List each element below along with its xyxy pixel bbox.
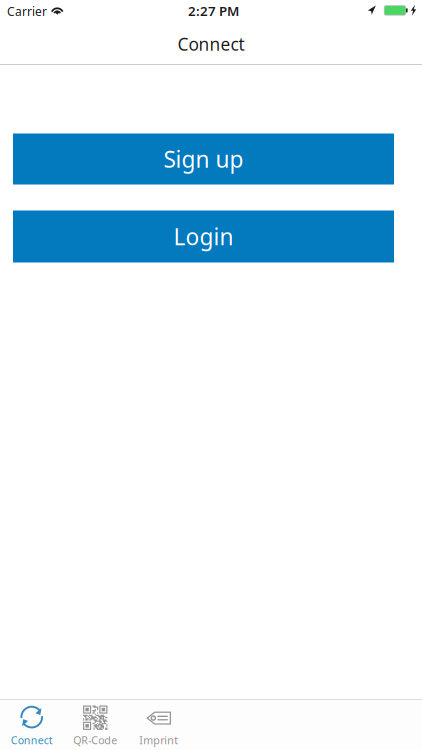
staticText: Sign up	[163, 144, 243, 174]
staticText: Imprint	[139, 733, 178, 747]
button[interactable]: Sign up	[13, 133, 394, 184]
staticText: 2:27 PM	[188, 2, 239, 20]
staticText: QR-Code	[73, 733, 117, 747]
button[interactable]: QR-Code	[63, 700, 127, 750]
staticText: Carrier	[7, 3, 47, 19]
staticText: Connect	[11, 733, 53, 747]
button[interactable]: Connect	[0, 700, 63, 750]
staticText: Connect	[177, 32, 244, 55]
button[interactable]: Imprint	[127, 700, 190, 750]
staticText: Login	[173, 221, 233, 251]
button[interactable]: Login	[13, 210, 394, 262]
